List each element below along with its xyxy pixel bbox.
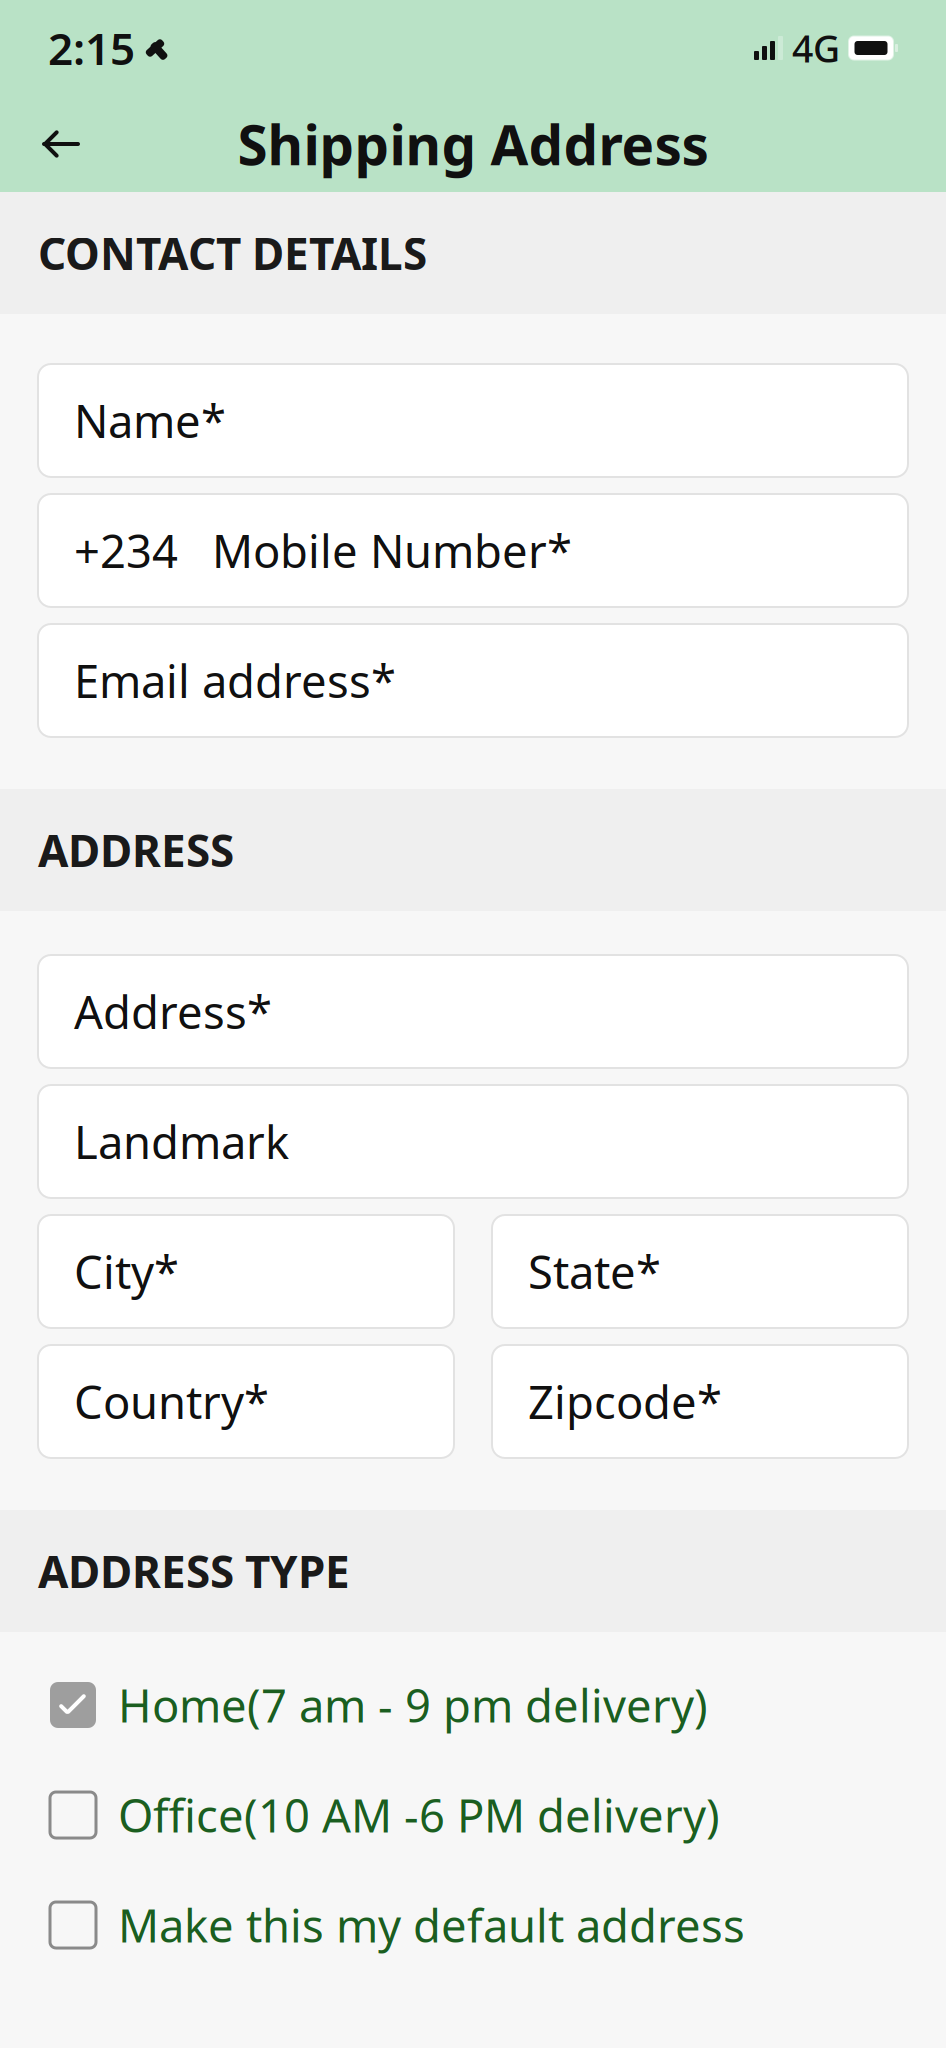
staticText: 4G [792,23,840,73]
staticText: 2:15 [48,19,135,77]
button[interactable]: Make this my default address [0,1880,946,1970]
staticText: Landmark [74,1111,289,1172]
button[interactable]: Zipcode* [492,1345,908,1458]
button[interactable]: City* [38,1215,454,1328]
button[interactable]: Name* [38,364,908,477]
staticText: ADDRESS [38,821,234,879]
button[interactable]: Back [22,105,100,183]
staticText: +234 [74,520,178,581]
button[interactable]: Home(7 am - 9 pm delivery) [0,1660,946,1750]
staticText: Make this my default address [118,1895,745,1955]
staticText: Office(10 AM -6 PM delivery) [118,1785,720,1845]
button[interactable]: +234 [38,494,908,607]
staticText: Shipping Address [237,108,708,180]
staticText: State* [528,1241,661,1302]
button[interactable]: Landmark [38,1085,908,1198]
button[interactable]: Office(10 AM -6 PM delivery) [0,1770,946,1860]
staticText: Email address* [74,650,396,711]
staticText: Country* [74,1371,269,1432]
staticText: Home(7 am - 9 pm delivery) [118,1675,708,1735]
button[interactable]: Country* [38,1345,454,1458]
button[interactable]: Email address* [38,624,908,737]
staticText: Mobile Number* [212,520,572,581]
button[interactable]: State* [492,1215,908,1328]
button[interactable]: Address* [38,955,908,1068]
staticText: City* [74,1241,179,1302]
staticText: ADDRESS TYPE [38,1542,350,1600]
staticText: Address* [74,981,272,1042]
staticText: Name* [74,390,226,451]
staticText: CONTACT DETAILS [38,224,427,282]
staticText: Zipcode* [528,1371,722,1432]
